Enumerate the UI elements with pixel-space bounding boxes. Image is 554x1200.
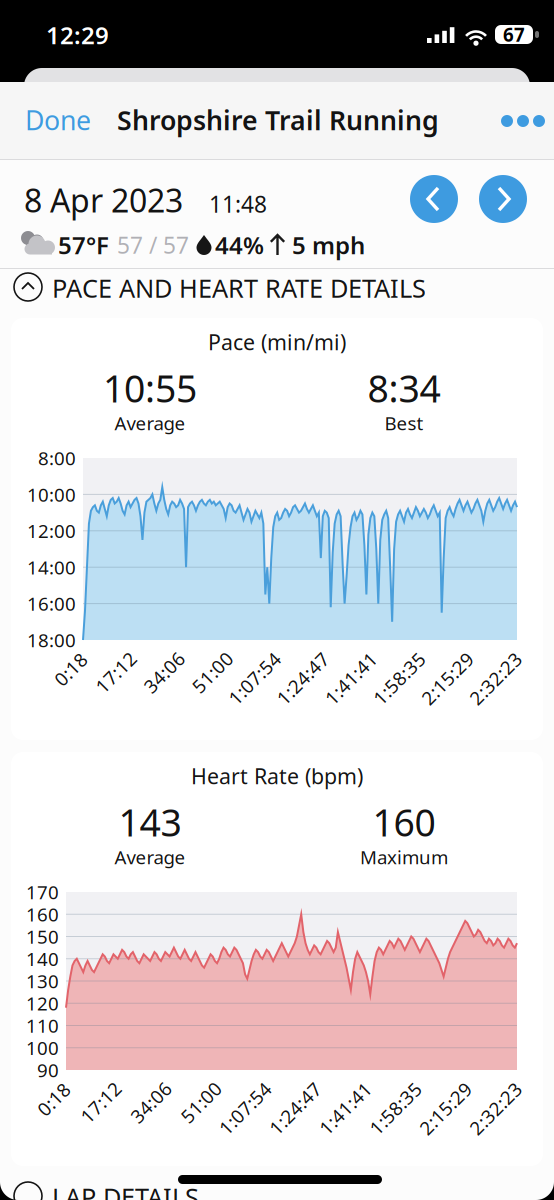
staticText: 51:00 xyxy=(188,660,237,685)
staticText: Average xyxy=(114,845,185,869)
staticText: 1:07:54 xyxy=(222,666,287,691)
staticText: 130 xyxy=(26,969,59,993)
staticText: 160 xyxy=(372,797,435,847)
staticText: 57°F xyxy=(58,229,109,261)
staticText: 2:32:23 xyxy=(463,1096,528,1121)
staticText: 17:12 xyxy=(91,660,140,685)
staticText: Shropshire Trail Running xyxy=(117,102,439,138)
staticText: 17:12 xyxy=(76,1090,125,1115)
staticText: 2:15:29 xyxy=(413,1096,478,1121)
staticText: 1:41:41 xyxy=(313,1096,378,1121)
staticText: 10:55 xyxy=(103,363,197,413)
staticText: PACE AND HEART RATE DETAILS xyxy=(52,271,426,305)
staticText: LAP DETAILS xyxy=(52,1180,199,1200)
staticText: 14:00 xyxy=(27,555,76,580)
staticText: 5 mph xyxy=(292,229,365,261)
staticText: 44% xyxy=(215,229,264,261)
staticText: 11:48 xyxy=(209,189,267,219)
staticText: 0:18 xyxy=(35,1087,73,1112)
staticText: 51:00 xyxy=(177,1090,226,1115)
staticText: Heart Rate (bpm) xyxy=(191,762,363,790)
staticText: Average xyxy=(114,411,185,435)
staticText: Done xyxy=(25,102,91,138)
staticText: 1:24:47 xyxy=(263,1096,328,1121)
staticText: 12:29 xyxy=(46,19,109,51)
staticText: 1:41:41 xyxy=(318,666,383,691)
staticText: 67 xyxy=(503,22,525,47)
staticText: 12:00 xyxy=(27,518,76,543)
staticText: 57 / 57 xyxy=(117,230,189,260)
staticText: 160 xyxy=(26,902,59,927)
staticText: 1:07:54 xyxy=(213,1096,278,1121)
staticText: 140 xyxy=(26,946,59,971)
staticText: 8:00 xyxy=(38,446,76,470)
staticText: 34:06 xyxy=(126,1090,175,1115)
staticText: 18:00 xyxy=(27,628,76,652)
button[interactable]: PACE AND HEART RATE DETAILS xyxy=(0,0,554,1200)
staticText: Maximum xyxy=(360,845,448,869)
staticText: 16:00 xyxy=(27,591,76,616)
staticText: Best xyxy=(384,411,423,435)
staticText: 0:18 xyxy=(52,657,90,682)
staticText: 2:15:29 xyxy=(415,666,480,691)
button[interactable]: Next activity xyxy=(0,0,554,1200)
staticText: 120 xyxy=(26,991,59,1016)
staticText: 110 xyxy=(26,1013,59,1038)
staticText: 10:00 xyxy=(27,482,76,507)
staticText: Pace (min/mi) xyxy=(208,328,346,356)
staticText: 2:32:23 xyxy=(463,666,528,691)
button[interactable]: Done xyxy=(0,0,554,1200)
staticText: 143 xyxy=(118,797,181,847)
staticText: 8:34 xyxy=(367,363,440,413)
staticText: 100 xyxy=(26,1035,59,1060)
staticText: 150 xyxy=(26,924,59,949)
staticText: 1:58:35 xyxy=(363,1096,428,1121)
staticText: 170 xyxy=(26,880,59,904)
button[interactable]: Previous activity xyxy=(0,0,554,1200)
staticText: 8 Apr 2023 xyxy=(24,179,183,221)
staticText: 1:58:35 xyxy=(367,666,432,691)
staticText: 1:24:47 xyxy=(270,666,335,691)
staticText: 90 xyxy=(37,1058,59,1082)
button[interactable]: More options xyxy=(0,0,554,1200)
staticText: 34:06 xyxy=(140,660,189,685)
